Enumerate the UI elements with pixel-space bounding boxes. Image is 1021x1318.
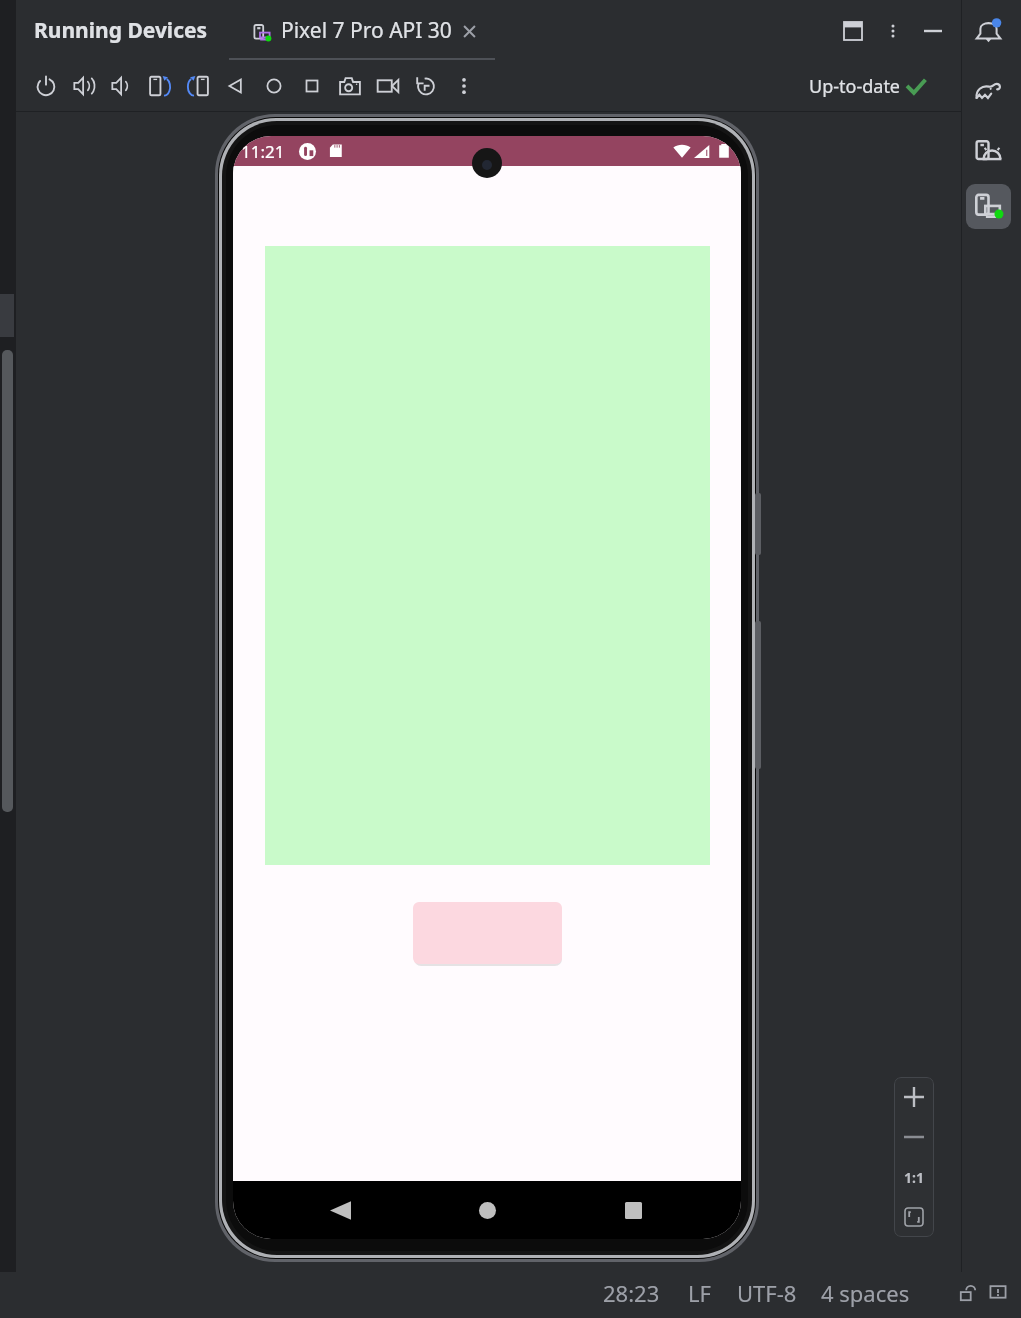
staticText: LF (688, 1278, 711, 1308)
staticText: 11:21 (241, 140, 285, 163)
button[interactable]: More options (877, 15, 909, 47)
button[interactable]: More (445, 67, 483, 105)
staticText: Running Devices (34, 16, 208, 45)
button[interactable]: Rotate right (179, 67, 217, 105)
button[interactable]: Close tab (455, 17, 483, 45)
button[interactable]: Up-to-date (801, 68, 933, 105)
button[interactable]: Volume down (103, 67, 141, 105)
button[interactable]: Record (369, 67, 407, 105)
button[interactable]: Running devices (966, 184, 1011, 229)
button[interactable]: Back (316, 1186, 364, 1234)
button[interactable]: Device manager (963, 126, 1013, 176)
staticText: Pixel 7 Pro API 30 (281, 16, 452, 45)
button[interactable]: Lock (956, 1281, 980, 1305)
button[interactable]: Pixel 7 Pro API 30 (248, 10, 487, 51)
button[interactable]: Actual size (894, 1157, 934, 1197)
button[interactable]: Fit to screen (894, 1197, 934, 1237)
staticText: Up-to-date (809, 74, 901, 99)
button[interactable]: Notifications (963, 6, 1013, 56)
button[interactable]: Back (217, 67, 255, 105)
button[interactable]: History (407, 67, 445, 105)
button[interactable]: Minimize (917, 15, 949, 47)
staticText: 1:1 (904, 1168, 924, 1187)
staticText: UTF-8 (737, 1278, 797, 1308)
button[interactable]: Gradle (963, 66, 1013, 116)
button[interactable]: Zoom in (894, 1077, 934, 1117)
button[interactable]: Volume up (65, 67, 103, 105)
button[interactable]: Home (255, 67, 293, 105)
button[interactable]: Split (837, 15, 869, 47)
staticText: 28:23 (603, 1278, 660, 1308)
button[interactable]: Problems (986, 1281, 1010, 1305)
button[interactable]: Power (27, 67, 65, 105)
button[interactable]: Recents (609, 1186, 657, 1234)
button[interactable]: Overview (293, 67, 331, 105)
button[interactable]: Zoom out (894, 1117, 934, 1157)
staticText: 4 spaces (821, 1278, 910, 1308)
button[interactable]: Home (463, 1186, 511, 1234)
button[interactable]: Rotate left (141, 67, 179, 105)
button[interactable]: Screenshot (331, 67, 369, 105)
